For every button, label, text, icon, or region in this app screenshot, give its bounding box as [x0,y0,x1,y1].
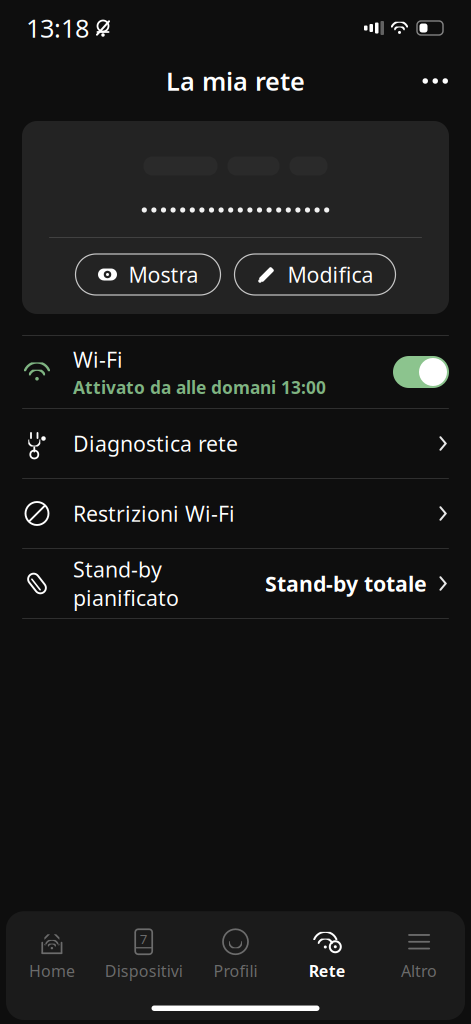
staticText: Modifica [287,260,373,289]
button[interactable]: Rete [281,920,373,989]
button[interactable]: Altro [373,920,465,989]
staticText: Attivato da alle domani 13:00 [73,376,326,399]
button[interactable]: Restrizioni Wi-Fi [0,479,471,548]
staticText: La mia rete [166,64,305,98]
staticText: Stand-by totale [265,569,427,598]
staticText: Dispositivi [105,960,183,981]
button[interactable]: Wi-Fi [0,336,471,408]
button[interactable]: Profili [190,920,281,989]
staticText: Altro [401,960,437,981]
button[interactable]: Home [6,920,98,989]
staticText: 13:18 [26,11,89,45]
button[interactable]: Diagnostica rete [0,409,471,478]
staticText: 7 [140,930,148,948]
staticText: Mostra [128,260,198,289]
button[interactable]: Modifica [234,254,395,295]
button[interactable]: Stand-by pianificato [0,549,471,618]
button[interactable]: Altre opzioni [410,64,460,98]
staticText: Restrizioni Wi-Fi [73,499,235,528]
staticText: Wi-Fi [73,345,123,374]
staticText: Diagnostica rete [73,429,238,458]
button[interactable]: Mostra [75,254,220,295]
staticText: Profili [213,960,257,981]
button[interactable]: 7 [98,920,190,989]
staticText: Stand-by pianificato [73,555,179,612]
staticText: Rete [309,960,346,981]
staticText: Home [29,960,75,981]
